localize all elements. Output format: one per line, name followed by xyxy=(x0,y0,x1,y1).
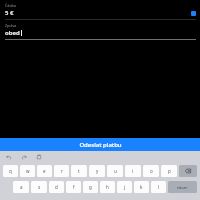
button[interactable]: u xyxy=(107,165,123,177)
button[interactable]: Měna xyxy=(191,11,196,16)
button[interactable]: t xyxy=(71,165,87,177)
staticText: a xyxy=(20,184,23,190)
button[interactable]: Smazat xyxy=(179,165,197,177)
staticText: Zpráva xyxy=(5,23,17,28)
staticText: Odeslat platbu xyxy=(79,141,122,149)
staticText: j xyxy=(124,184,126,190)
button[interactable]: Zpět xyxy=(5,153,13,161)
button[interactable]: a xyxy=(13,181,29,193)
staticText: q xyxy=(9,168,12,174)
staticText: p xyxy=(168,168,171,174)
button[interactable]: 5 € xyxy=(5,9,191,17)
staticText: f xyxy=(73,184,75,190)
staticText: k xyxy=(140,184,143,190)
staticText: 5 € xyxy=(5,9,14,17)
button[interactable]: j xyxy=(117,181,132,193)
button[interactable]: k xyxy=(134,181,149,193)
staticText: h xyxy=(106,184,109,190)
button[interactable]: i xyxy=(125,165,141,177)
staticText: l xyxy=(158,184,160,190)
staticText: return xyxy=(177,185,188,190)
staticText: t xyxy=(78,168,80,174)
button[interactable]: w xyxy=(20,165,35,177)
staticText: y xyxy=(96,168,99,174)
staticText: g xyxy=(89,184,92,190)
button[interactable]: f xyxy=(66,181,81,193)
button[interactable]: g xyxy=(83,181,98,193)
button[interactable]: r xyxy=(54,165,69,177)
button[interactable]: q xyxy=(3,165,18,177)
button[interactable]: h xyxy=(100,181,115,193)
button[interactable]: e xyxy=(37,165,52,177)
staticText: obed xyxy=(5,29,20,37)
button[interactable]: p xyxy=(161,165,177,177)
staticText: d xyxy=(55,184,58,190)
staticText: w xyxy=(26,168,30,174)
button[interactable]: y xyxy=(89,165,105,177)
button[interactable]: l xyxy=(151,181,166,193)
button[interactable]: Odeslat platbu xyxy=(0,138,200,151)
staticText: o xyxy=(150,168,153,174)
button[interactable]: Vpřed xyxy=(20,153,28,161)
button[interactable]: d xyxy=(49,181,64,193)
button[interactable]: s xyxy=(31,181,47,193)
staticText: u xyxy=(114,168,117,174)
staticText: e xyxy=(43,168,46,174)
staticText: s xyxy=(38,184,41,190)
button[interactable]: o xyxy=(143,165,159,177)
button[interactable]: obed xyxy=(5,29,196,37)
staticText: r xyxy=(61,168,63,174)
staticText: i xyxy=(132,168,134,174)
button[interactable]: return xyxy=(168,181,197,193)
button[interactable]: Vložit xyxy=(35,153,43,161)
staticText: Částka xyxy=(5,3,16,8)
